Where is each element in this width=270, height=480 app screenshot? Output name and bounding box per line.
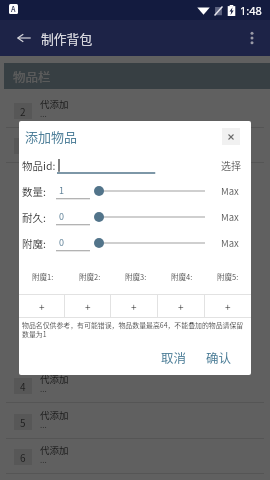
button[interactable]: Add enchantment 4	[158, 295, 204, 317]
staticText: 附魔:	[22, 236, 46, 251]
staticText: 代添加	[40, 408, 69, 422]
button[interactable]: Add enchantment 2	[65, 295, 110, 317]
staticText: ...	[40, 454, 47, 466]
staticText: 物品名仅供参考，有可能错误，物品数量最高64，不能叠加的物品请保留 数量为1	[22, 320, 244, 339]
staticText: 6	[20, 450, 26, 464]
staticText: 附魔4:	[171, 271, 193, 282]
staticText: +	[39, 299, 45, 313]
staticText: 5	[20, 415, 26, 429]
staticText: 1	[59, 184, 64, 197]
staticText: 0	[59, 210, 64, 223]
button[interactable]: 数量: value	[56, 183, 90, 200]
staticText: Max	[221, 210, 239, 224]
staticText: 数量:	[22, 184, 46, 199]
staticText: 附魔2:	[79, 271, 101, 282]
staticText: 取消	[161, 348, 187, 366]
button[interactable]: 耐久:	[93, 204, 205, 230]
button[interactable]: 2	[0, 93, 270, 128]
button[interactable]: 选择	[221, 158, 241, 172]
staticText: 确认	[206, 348, 232, 366]
button[interactable]: Add enchantment 3	[111, 295, 157, 317]
button[interactable]: Item id input	[57, 156, 207, 174]
staticText: ...	[40, 383, 47, 395]
staticText: 选择	[221, 158, 241, 172]
button[interactable]: 数量:	[93, 178, 205, 204]
button[interactable]: Max	[221, 236, 239, 250]
staticText: 制作背包	[41, 29, 93, 48]
staticText: 4	[20, 379, 26, 393]
button[interactable]: 4	[0, 368, 270, 403]
button[interactable]: 耐久: value	[56, 209, 90, 226]
button[interactable]: 附魔: value	[56, 235, 90, 252]
button[interactable]: 3	[0, 128, 270, 163]
staticText: 附魔1:	[32, 271, 54, 282]
staticText: +	[178, 299, 184, 313]
button[interactable]: 附魔:	[93, 230, 205, 256]
staticText: 物品栏	[13, 67, 51, 85]
button[interactable]: Max	[221, 210, 239, 224]
staticText: ...	[40, 419, 47, 431]
staticText: 代添加	[40, 132, 69, 146]
staticText: Max	[221, 236, 239, 250]
staticText: ...	[40, 108, 47, 120]
staticText: 耐久:	[22, 210, 46, 225]
button[interactable]: 确认	[201, 344, 237, 370]
staticText: 2	[20, 104, 26, 118]
button[interactable]: Max	[221, 184, 239, 198]
button[interactable]: Add enchantment 5	[205, 295, 251, 317]
staticText: 代添加	[40, 97, 69, 111]
staticText: 代添加	[40, 443, 69, 457]
button[interactable]: 6	[0, 439, 270, 474]
button[interactable]: 取消	[156, 344, 192, 370]
button[interactable]: Add enchantment 1	[19, 295, 64, 317]
staticText: 附魔3:	[125, 271, 147, 282]
staticText: ...	[40, 143, 47, 155]
staticText: A	[11, 4, 16, 14]
button[interactable]: Back	[6, 20, 42, 56]
staticText: 0	[59, 236, 64, 249]
button[interactable]: 5	[0, 404, 270, 439]
staticText: 代添加	[40, 372, 69, 386]
staticText: 1:48	[240, 3, 262, 18]
staticText: +	[85, 299, 91, 313]
staticText: Max	[221, 184, 239, 198]
button[interactable]: More options	[234, 20, 270, 56]
button[interactable]: Close	[222, 128, 240, 145]
staticText: +	[225, 299, 231, 313]
staticText: 添加物品	[25, 127, 78, 146]
staticText: 附魔5:	[217, 271, 239, 282]
staticText: +	[131, 299, 137, 313]
staticText: 物品id:	[22, 158, 56, 173]
